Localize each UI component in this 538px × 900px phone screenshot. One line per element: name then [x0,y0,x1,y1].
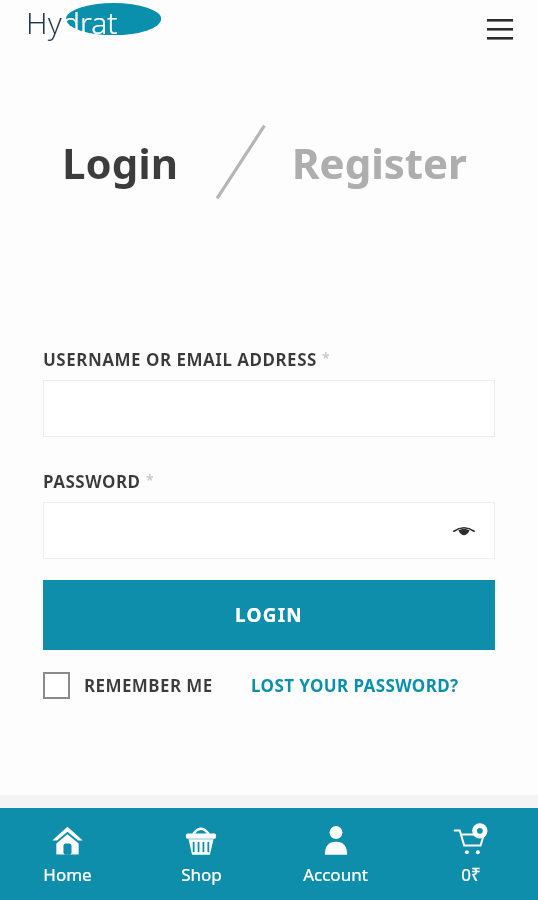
staticText: Account [303,863,368,886]
button[interactable]: Register [292,134,467,191]
button[interactable]: Hydrat home [24,2,164,48]
staticText: drat [62,2,118,42]
staticText: Login [62,134,179,191]
button[interactable]: Account [268,808,403,900]
button[interactable]: Show password [447,514,481,548]
button[interactable]: Show password [43,502,495,559]
staticText: 0₹ [461,863,481,886]
button[interactable]: Home [0,808,134,900]
staticText: USERNAME OR EMAIL ADDRESS [43,348,317,371]
button[interactable]: Menu [478,6,522,50]
button[interactable]: Shop [134,808,268,900]
button[interactable]: LOGIN [43,580,495,650]
staticText: PASSWORD [43,470,141,493]
button[interactable] [43,380,495,437]
button[interactable]: Login [62,134,179,191]
staticText: Shop [181,863,222,886]
button[interactable]: 0₹ [403,808,538,900]
button[interactable]: LOST YOUR PASSWORD? [251,674,459,697]
staticText: Register [292,134,467,191]
staticText: * [146,470,154,489]
button[interactable]: REMEMBER ME [43,672,213,699]
staticText: LOGIN [235,602,303,628]
staticText: Hy [26,2,62,42]
staticText: REMEMBER ME [84,674,213,697]
staticText: Home [43,863,92,886]
staticText: * [322,348,330,367]
staticText: LOST YOUR PASSWORD? [251,674,459,697]
